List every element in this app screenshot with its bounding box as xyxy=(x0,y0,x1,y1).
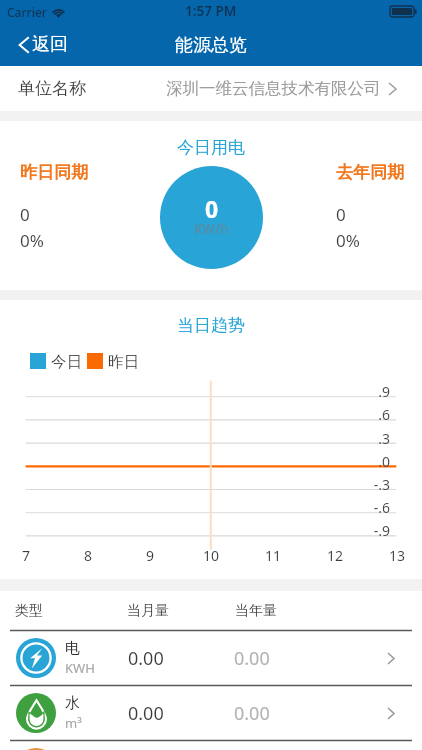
staticText: .9 xyxy=(356,382,390,401)
staticText: 11 xyxy=(259,546,287,565)
button[interactable]: 气 xyxy=(0,741,422,750)
staticText: -.3 xyxy=(356,475,390,494)
staticText: 9 xyxy=(136,546,164,565)
staticText: -.9 xyxy=(356,521,390,540)
staticText: 类型 xyxy=(15,602,43,620)
staticText: 1:57 PM xyxy=(185,2,237,20)
staticText: 0% xyxy=(20,229,44,252)
button[interactable]: 单位名称 xyxy=(0,66,422,111)
staticText: .0 xyxy=(356,452,390,471)
staticText: 7 xyxy=(12,546,40,565)
staticText: 能源总览 xyxy=(175,34,247,57)
staticText: 今日用电 xyxy=(177,137,245,158)
staticText: .3 xyxy=(356,429,390,448)
staticText: 0.00 xyxy=(234,701,270,726)
staticText: 单位名称 xyxy=(18,78,86,99)
staticText: 8 xyxy=(74,546,102,565)
staticText: 13 xyxy=(383,546,411,565)
staticText: 0 xyxy=(336,203,346,226)
staticText: 今日 xyxy=(51,352,82,372)
staticText: .6 xyxy=(356,405,390,424)
staticText: m³ xyxy=(65,714,82,732)
staticText: 水 xyxy=(65,694,80,713)
button[interactable]: 返回 xyxy=(0,27,82,64)
button[interactable]: 电 xyxy=(0,631,422,685)
staticText: 当日趋势 xyxy=(177,315,245,336)
staticText: 0 xyxy=(205,193,219,224)
staticText: 0.00 xyxy=(234,646,270,671)
staticText: 12 xyxy=(321,546,349,565)
button[interactable]: 水 xyxy=(0,686,422,740)
staticText: 去年同期 xyxy=(336,162,404,183)
staticText: Carrier xyxy=(7,4,47,20)
staticText: 0.00 xyxy=(128,701,164,726)
staticText: -.6 xyxy=(356,498,390,517)
staticText: 0% xyxy=(336,229,360,252)
staticText: 0.00 xyxy=(128,646,164,671)
other: Details xyxy=(387,707,395,720)
staticText: 0 xyxy=(20,203,30,226)
staticText: KW/h xyxy=(194,220,229,238)
staticText: 10 xyxy=(197,546,225,565)
staticText: 返回 xyxy=(32,33,68,56)
other: Details xyxy=(387,652,395,665)
staticText: 当年量 xyxy=(235,602,277,620)
staticText: 当月量 xyxy=(127,602,169,620)
staticText: KWH xyxy=(65,659,95,677)
staticText: 昨日 xyxy=(108,352,139,372)
staticText: 电 xyxy=(65,639,80,658)
staticText: 昨日同期 xyxy=(20,162,88,183)
staticText: 深圳一维云信息技术有限公司 xyxy=(166,78,381,99)
